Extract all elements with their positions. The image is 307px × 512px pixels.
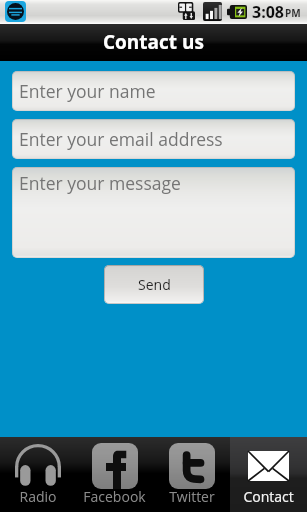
other: Contact (248, 451, 289, 481)
other: Radio (15, 444, 61, 488)
staticText: Radio (19, 487, 57, 506)
button[interactable]: Contact (230, 437, 307, 512)
staticText: Enter your name (19, 79, 156, 103)
staticText: Enter your message (19, 171, 181, 195)
button[interactable]: Send (104, 265, 204, 304)
button[interactable]: Enter your email address (12, 119, 295, 159)
button[interactable]: Enter your name (12, 71, 295, 111)
button[interactable]: Facebook (76, 437, 153, 512)
staticText: Contact (243, 487, 294, 506)
other: Facebook (92, 443, 138, 489)
staticText: Facebook (83, 487, 146, 506)
other: Twitter (169, 443, 215, 489)
staticText: Twitter (169, 487, 215, 506)
button[interactable]: Radio (0, 437, 76, 512)
staticText: Enter your email address (19, 127, 223, 151)
button[interactable]: Twitter (153, 437, 230, 512)
staticText: 3:08 (252, 1, 284, 23)
staticText: Send (138, 275, 171, 294)
staticText: PM (285, 6, 301, 20)
button[interactable]: Enter your message (12, 167, 295, 258)
staticText: Contact us (103, 29, 204, 55)
